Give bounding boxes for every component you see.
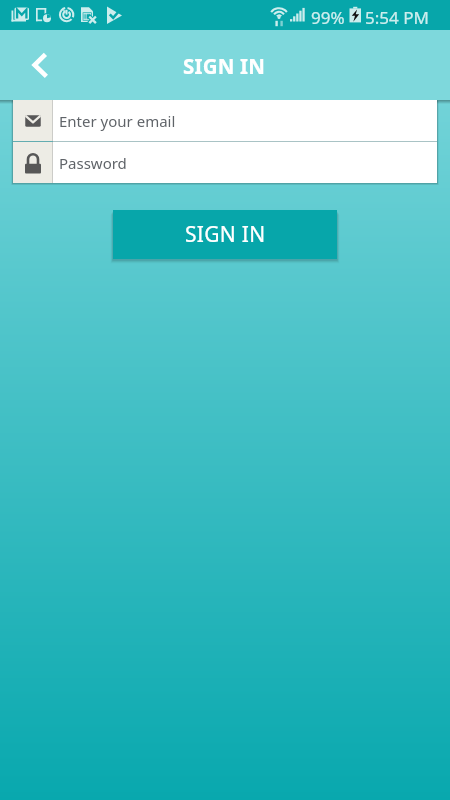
button[interactable]: SIGN IN <box>113 210 337 259</box>
staticText: SIGN IN <box>185 220 266 249</box>
button[interactable]: Password <box>13 142 437 183</box>
button[interactable]: Enter your email <box>13 100 437 141</box>
staticText: Password <box>59 153 127 173</box>
staticText: SIGN IN <box>183 52 266 80</box>
staticText: 5:54 PM <box>365 6 429 29</box>
staticText: 99% <box>311 6 345 29</box>
staticText: Enter your email <box>59 111 176 131</box>
button[interactable]: Back <box>18 43 62 87</box>
